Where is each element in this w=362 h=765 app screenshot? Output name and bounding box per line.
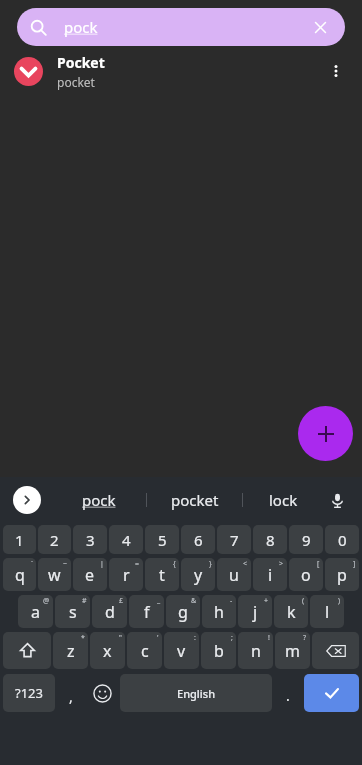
staticText: `: [31, 559, 33, 569]
button[interactable]: 8: [253, 525, 287, 554]
staticText: q: [15, 564, 25, 586]
button[interactable]: 9: [289, 525, 323, 554]
button[interactable]: 5: [145, 525, 179, 554]
button[interactable]: 1: [3, 525, 36, 554]
button[interactable]: a: [18, 595, 53, 628]
staticText: 9: [302, 530, 311, 550]
staticText: -: [230, 596, 233, 606]
staticText: ": [119, 633, 122, 643]
staticText: 1: [15, 530, 24, 550]
button[interactable]: g: [166, 595, 200, 628]
staticText: n: [251, 640, 261, 662]
button[interactable]: n: [238, 632, 273, 669]
button[interactable]: Enter: [304, 674, 359, 712]
button[interactable]: Voice input: [321, 484, 353, 516]
staticText: Pocket: [57, 53, 105, 72]
button[interactable]: r: [109, 558, 143, 591]
button[interactable]: l: [310, 595, 344, 628]
button[interactable]: b: [201, 632, 236, 669]
staticText: lock: [269, 490, 298, 510]
staticText: {: [173, 559, 176, 569]
button[interactable]: j: [238, 595, 272, 628]
staticText: v: [177, 640, 186, 662]
staticText: !: [268, 633, 270, 643]
staticText: 5: [158, 530, 167, 550]
button[interactable]: s: [55, 595, 90, 628]
staticText: pock: [64, 17, 98, 37]
staticText: (: [302, 596, 305, 606]
staticText: £: [119, 596, 124, 606]
button[interactable]: o: [289, 558, 323, 591]
staticText: j: [253, 601, 258, 623]
staticText: z: [67, 640, 75, 662]
staticText: +: [264, 596, 269, 606]
button[interactable]: pock: [52, 477, 146, 523]
button[interactable]: h: [202, 595, 236, 628]
button[interactable]: pocket: [147, 477, 242, 523]
staticText: 0: [338, 530, 347, 550]
button[interactable]: Shift: [3, 632, 51, 669]
button[interactable]: English: [120, 674, 272, 712]
button[interactable]: 7: [217, 525, 251, 554]
staticText: f: [144, 601, 150, 623]
staticText: w: [48, 564, 61, 586]
button[interactable]: y: [181, 558, 215, 591]
staticText: pocket: [171, 490, 219, 510]
staticText: a: [31, 601, 40, 623]
button[interactable]: .: [274, 671, 302, 715]
staticText: }: [209, 559, 212, 569]
button[interactable]: ,: [57, 671, 85, 715]
button[interactable]: 3: [73, 525, 107, 554]
button[interactable]: More options: [318, 53, 354, 89]
staticText: <: [243, 559, 248, 569]
staticText: 2: [50, 530, 59, 550]
button[interactable]: f: [129, 595, 164, 628]
button[interactable]: u: [217, 558, 251, 591]
staticText: pocket: [57, 74, 95, 90]
button[interactable]: 6: [181, 525, 215, 554]
button[interactable]: d: [92, 595, 127, 628]
staticText: >: [279, 559, 284, 569]
button[interactable]: x: [90, 632, 125, 669]
button[interactable]: 4: [109, 525, 143, 554]
staticText: c: [141, 640, 149, 662]
button[interactable]: Expand suggestions: [13, 486, 41, 514]
staticText: 7: [230, 530, 239, 550]
button[interactable]: z: [53, 632, 88, 669]
button[interactable]: Backspace: [312, 632, 359, 669]
button[interactable]: Clear search: [305, 12, 335, 42]
button[interactable]: 0: [325, 525, 359, 554]
staticText: ): [338, 596, 341, 606]
staticText: e: [85, 564, 95, 586]
button[interactable]: v: [164, 632, 199, 669]
staticText: y: [194, 564, 203, 586]
staticText: ?: [303, 633, 307, 643]
button[interactable]: p: [325, 558, 359, 591]
button[interactable]: e: [73, 558, 107, 591]
button[interactable]: i: [253, 558, 287, 591]
button[interactable]: Add: [298, 406, 353, 461]
staticText: l: [325, 601, 330, 623]
button[interactable]: c: [127, 632, 162, 669]
button[interactable]: 2: [38, 525, 71, 554]
staticText: #: [82, 596, 87, 606]
button[interactable]: t: [145, 558, 179, 591]
staticText: ': [157, 633, 159, 643]
button[interactable]: Search: [17, 8, 345, 46]
button[interactable]: lock: [243, 477, 324, 523]
button[interactable]: m: [275, 632, 310, 669]
staticText: x: [103, 640, 112, 662]
button[interactable]: w: [38, 558, 71, 591]
staticText: ~: [63, 559, 68, 569]
button[interactable]: Pocket: [0, 46, 362, 96]
button[interactable]: q: [3, 558, 36, 591]
staticText: .: [286, 686, 290, 705]
staticText: pock: [82, 490, 116, 510]
staticText: 8: [266, 530, 275, 550]
staticText: :: [194, 633, 196, 643]
button[interactable]: k: [274, 595, 308, 628]
staticText: m: [285, 640, 300, 662]
button[interactable]: ?123: [3, 674, 55, 712]
staticText: 6: [194, 530, 203, 550]
button[interactable]: Emoji: [87, 671, 118, 715]
